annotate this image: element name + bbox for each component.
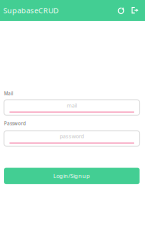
staticText: Password <box>4 120 26 127</box>
staticText: password <box>60 133 84 140</box>
staticText: Mail <box>4 90 13 96</box>
button[interactable]: Refresh <box>115 3 127 18</box>
button[interactable]: Log out <box>129 3 141 18</box>
staticText: Login/Signup <box>53 172 90 180</box>
staticText: mail <box>67 102 77 109</box>
staticText: SupabaseCRUD <box>3 5 58 15</box>
button[interactable]: Login/Signup <box>4 168 140 184</box>
